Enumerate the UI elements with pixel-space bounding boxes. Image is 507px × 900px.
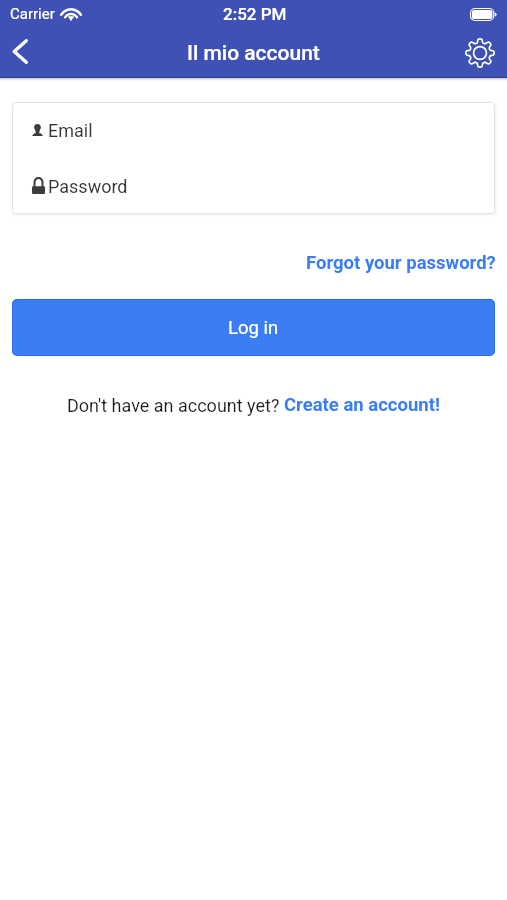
button[interactable]: Settings	[463, 31, 507, 75]
staticText: Il mio account	[187, 41, 320, 66]
button[interactable]: Forgot your password?	[295, 249, 507, 277]
button[interactable]: Email	[12, 102, 495, 158]
staticText: Password	[48, 176, 128, 197]
staticText: Don't have an account yet?	[67, 395, 284, 416]
button[interactable]: Create an account!	[284, 394, 440, 416]
staticText: Email	[48, 120, 93, 141]
staticText: 2:52 PM	[223, 4, 287, 24]
button[interactable]: Log in	[12, 299, 495, 356]
button[interactable]: Back	[0, 31, 44, 75]
staticText: Forgot your password?	[306, 252, 496, 274]
staticText: Carrier	[10, 5, 55, 23]
button[interactable]: Password	[12, 158, 495, 214]
staticText: Create an account!	[284, 394, 440, 416]
staticText: Log in	[228, 317, 279, 339]
